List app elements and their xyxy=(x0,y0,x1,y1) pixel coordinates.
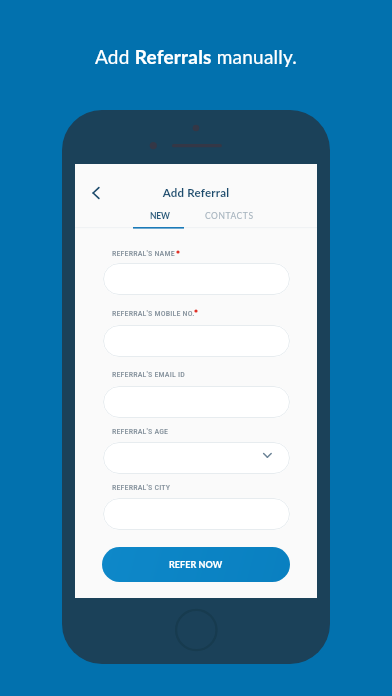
staticText: REFERRAL'S CITY xyxy=(112,483,171,492)
staticText: REFERRAL'S MOBILE NO. xyxy=(112,309,195,318)
staticText: Add Referrals manually. xyxy=(0,45,392,68)
staticText: REFERRAL'S NAME xyxy=(112,249,175,258)
staticText: CONTACTS xyxy=(205,211,254,221)
button[interactable] xyxy=(103,498,290,530)
staticText: NEW xyxy=(150,211,170,221)
staticText: REFER NOW xyxy=(169,559,223,570)
button[interactable]: CONTACTS xyxy=(203,211,255,229)
button[interactable]: Back xyxy=(83,180,109,206)
button[interactable] xyxy=(103,386,290,418)
button[interactable]: REFER NOW xyxy=(102,547,290,582)
button[interactable] xyxy=(103,263,290,295)
button[interactable] xyxy=(103,325,290,357)
staticText: Add Referral xyxy=(75,186,317,200)
button[interactable]: NEW xyxy=(134,211,185,229)
staticText: REFERRAL'S AGE xyxy=(112,427,169,436)
button[interactable]: Select age xyxy=(254,444,280,470)
staticText: REFERRAL'S EMAIL ID xyxy=(112,370,185,379)
button[interactable] xyxy=(103,442,290,474)
